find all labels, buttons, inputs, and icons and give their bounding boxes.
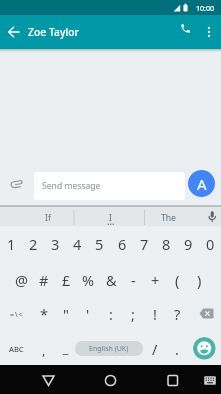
button[interactable]: # xyxy=(33,263,55,297)
button[interactable]: % xyxy=(77,263,99,297)
staticText: English (UK) xyxy=(89,344,129,354)
staticText: Send message xyxy=(42,180,101,192)
staticText: The xyxy=(161,212,176,224)
staticText: 10:00 xyxy=(196,3,215,13)
staticText: ) xyxy=(197,270,202,290)
button[interactable]: ; xyxy=(122,297,144,331)
staticText: , xyxy=(42,341,46,359)
staticText: 8 xyxy=(162,234,171,254)
button[interactable]: =\< xyxy=(0,297,33,331)
button[interactable] xyxy=(192,298,221,329)
staticText: " xyxy=(63,304,69,324)
button[interactable] xyxy=(201,372,219,389)
button[interactable]: ? xyxy=(166,297,188,331)
button[interactable]: / xyxy=(144,332,166,365)
button[interactable]: 6 xyxy=(111,227,133,261)
button[interactable] xyxy=(4,22,24,42)
button[interactable]: 0 xyxy=(199,227,221,261)
staticText: - xyxy=(131,270,136,290)
staticText: £ xyxy=(62,270,71,290)
staticText: ? xyxy=(174,304,181,324)
staticText: A xyxy=(197,174,207,194)
button[interactable] xyxy=(193,337,216,360)
staticText: If xyxy=(45,212,51,224)
staticText: 4 xyxy=(73,234,82,254)
button[interactable]: 9 xyxy=(177,227,199,261)
button[interactable]: , xyxy=(33,333,55,366)
button[interactable]: 1 xyxy=(0,227,22,261)
button[interactable]: £ xyxy=(55,263,77,297)
button[interactable]: Send message xyxy=(34,172,185,200)
staticText: 9 xyxy=(184,234,193,254)
staticText: 5 xyxy=(95,234,104,254)
button[interactable]: 3 xyxy=(44,227,66,261)
staticText: ; xyxy=(131,304,135,324)
button[interactable]: If xyxy=(18,208,78,228)
button[interactable]: @ xyxy=(11,263,33,297)
staticText: 7 xyxy=(140,234,149,254)
staticText: * xyxy=(40,304,48,324)
button[interactable]: 7 xyxy=(133,227,155,261)
button[interactable] xyxy=(200,22,218,42)
staticText: / xyxy=(152,339,158,359)
staticText: ( xyxy=(175,270,180,290)
staticText: 3 xyxy=(51,234,60,254)
staticText: & xyxy=(106,270,117,290)
staticText: 1 xyxy=(7,234,16,254)
button[interactable]: I xyxy=(83,208,138,228)
staticText: 6 xyxy=(118,234,127,254)
staticText: + xyxy=(151,270,160,290)
staticText: _ xyxy=(63,340,69,356)
button[interactable]: . xyxy=(166,332,188,365)
staticText: Zoe Taylor xyxy=(28,25,79,39)
button[interactable]: " xyxy=(55,297,77,331)
button[interactable]: * xyxy=(33,297,55,331)
staticText: 2 xyxy=(29,234,38,254)
button[interactable]: A xyxy=(188,170,215,197)
button[interactable]: ' xyxy=(77,297,99,331)
button[interactable]: ( xyxy=(166,263,188,297)
button[interactable] xyxy=(38,370,59,391)
staticText: ! xyxy=(153,304,157,324)
button[interactable]: + xyxy=(144,263,166,297)
button[interactable]: : xyxy=(100,297,122,331)
button[interactable]: 4 xyxy=(66,227,88,261)
button[interactable] xyxy=(100,370,121,391)
staticText: ' xyxy=(86,304,90,324)
staticText: : xyxy=(109,304,113,324)
button[interactable] xyxy=(172,21,194,43)
button[interactable]: 2 xyxy=(22,227,44,261)
staticText: # xyxy=(39,270,49,290)
button[interactable]: & xyxy=(100,263,122,297)
staticText: @ xyxy=(15,270,29,290)
button[interactable]: ! xyxy=(144,297,166,331)
button[interactable]: 8 xyxy=(155,227,177,261)
button[interactable] xyxy=(203,209,221,225)
staticText: ABC xyxy=(9,344,24,354)
button[interactable]: 5 xyxy=(88,227,110,261)
button[interactable]: - xyxy=(122,263,144,297)
button[interactable] xyxy=(8,177,27,194)
staticText: . xyxy=(175,339,179,359)
staticText: % xyxy=(82,270,95,290)
staticText: I xyxy=(109,212,112,224)
staticText: =\< xyxy=(10,309,24,319)
button[interactable] xyxy=(162,370,183,391)
button[interactable]: _ xyxy=(55,331,77,364)
button[interactable]: ) xyxy=(188,263,210,297)
button[interactable]: English (UK) xyxy=(75,341,143,356)
staticText: 0 xyxy=(206,234,215,254)
button[interactable]: The xyxy=(143,208,193,228)
button[interactable]: ABC xyxy=(0,332,33,365)
